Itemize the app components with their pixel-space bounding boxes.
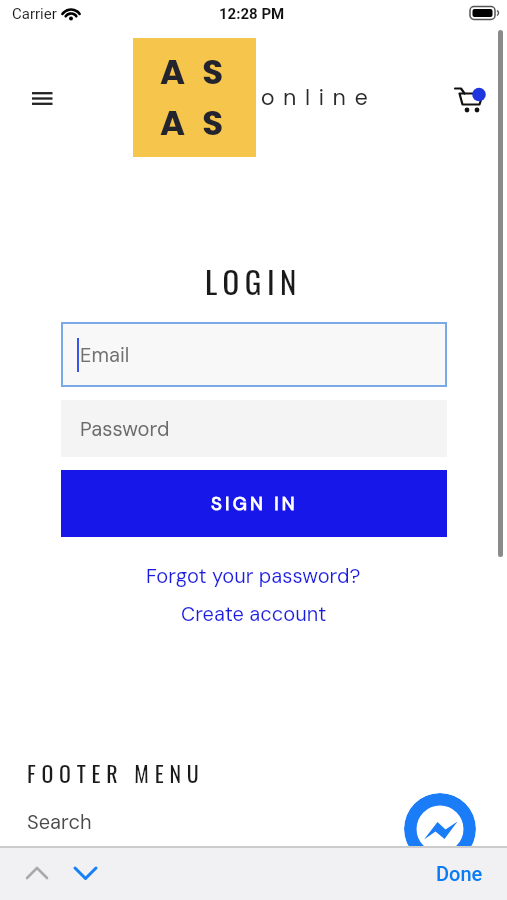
staticText: online — [261, 83, 377, 112]
button[interactable]: Forgot your password? — [146, 563, 361, 589]
button[interactable] — [24, 84, 60, 114]
staticText: SIGN IN — [211, 492, 298, 516]
staticText: 12:28 PM — [219, 5, 285, 23]
button[interactable]: A S — [133, 38, 377, 157]
button[interactable]: Search — [27, 809, 92, 835]
staticText: A S — [160, 48, 229, 96]
button[interactable]: Create account — [181, 601, 327, 627]
button[interactable]: Password — [61, 400, 447, 457]
button[interactable] — [404, 793, 476, 865]
staticText: LOGIN — [205, 258, 302, 304]
button[interactable]: Email — [61, 322, 447, 387]
staticText: Carrier — [12, 5, 57, 23]
staticText: Password — [80, 416, 170, 442]
staticText: Done — [436, 862, 483, 885]
staticText: Email — [80, 342, 130, 368]
staticText: FOOTER MENU — [27, 757, 205, 790]
button[interactable] — [22, 863, 52, 885]
button[interactable]: Done — [436, 862, 483, 885]
button[interactable] — [70, 863, 100, 885]
button[interactable]: SIGN IN — [61, 470, 447, 537]
button[interactable] — [448, 80, 490, 118]
staticText: A S — [160, 99, 229, 147]
